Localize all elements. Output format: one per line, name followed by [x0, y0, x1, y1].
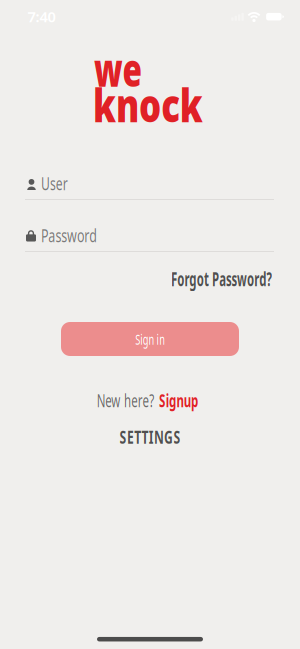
staticText: Password: [41, 224, 119, 247]
staticText: User: [41, 172, 79, 195]
staticText: SETTINGS: [107, 425, 193, 448]
staticText: Signup: [165, 389, 224, 412]
staticText: knock: [93, 74, 236, 135]
staticText: New here?: [71, 389, 158, 412]
button[interactable]: New here?: [71, 389, 224, 412]
button[interactable]: Password: [25, 224, 274, 252]
staticText: Sign in: [126, 329, 173, 349]
staticText: we: [94, 39, 163, 99]
button[interactable]: Forgot Password?: [139, 267, 300, 291]
button[interactable]: SETTINGS: [107, 425, 193, 448]
staticText: 7:40: [27, 7, 55, 26]
button[interactable]: User: [25, 172, 274, 200]
button[interactable]: Sign in: [61, 322, 239, 356]
staticText: Forgot Password?: [139, 267, 300, 291]
